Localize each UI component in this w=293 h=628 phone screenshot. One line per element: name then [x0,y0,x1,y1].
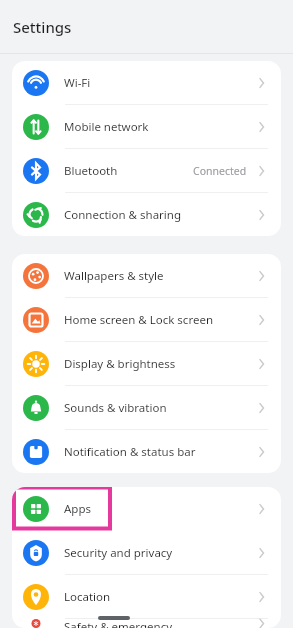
button[interactable]: Mobile network [12,105,281,148]
button[interactable]: Home screen & Lock screen [12,298,281,341]
staticText: Mobile network [64,119,149,135]
staticText: Connected [193,164,247,178]
staticText: Notification & status bar [64,444,196,460]
button[interactable]: Notification & status bar [12,430,281,473]
button[interactable]: Wallpapers & style [12,254,281,297]
staticText: Display & brightness [64,356,176,372]
button[interactable]: Sounds & vibration [12,386,281,429]
button[interactable]: Security and privacy [12,531,281,574]
staticText: Location [64,589,111,605]
staticText: Safety & emergency [64,619,173,628]
staticText: Bluetooth [64,163,118,179]
staticText: Connection & sharing [64,207,181,223]
staticText: Sounds & vibration [64,400,167,416]
staticText: Wi-Fi [64,75,91,91]
button[interactable]: Bluetooth [12,149,281,192]
button[interactable]: Connection & sharing [12,193,281,236]
staticText: Settings [13,17,72,37]
staticText: Apps [64,501,92,517]
button[interactable]: Safety & emergency [12,619,281,628]
staticText: Home screen & Lock screen [64,312,213,328]
button[interactable]: Wi-Fi [12,61,281,104]
staticText: Security and privacy [64,545,173,561]
button[interactable]: Apps [12,487,281,530]
button[interactable]: Display & brightness [12,342,281,385]
button[interactable]: Location [12,575,281,618]
staticText: Wallpapers & style [64,268,164,284]
